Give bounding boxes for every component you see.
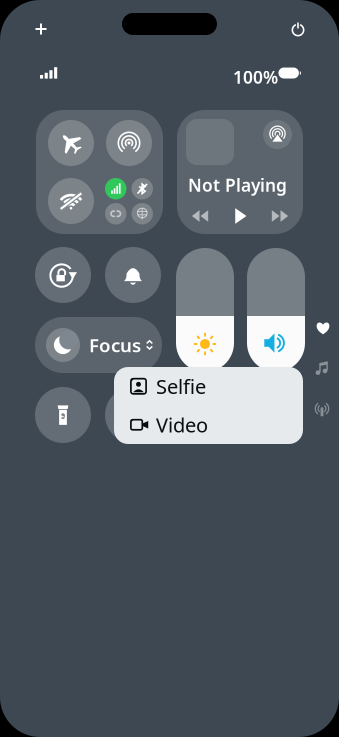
staticText: Not Playing — [188, 173, 287, 196]
button[interactable]: Home controls — [316, 321, 330, 335]
button[interactable]: Power off — [284, 15, 312, 43]
button[interactable]: AirPlay — [263, 120, 292, 149]
button[interactable]: Volume — [247, 248, 305, 372]
button[interactable]: Selfie — [114, 367, 303, 405]
button[interactable]: Media controls — [314, 360, 331, 377]
button[interactable]: Personal Hotspot — [105, 203, 126, 224]
button[interactable]: Flashlight — [35, 387, 91, 443]
button[interactable]: Brightness — [176, 248, 234, 372]
button[interactable]: Fast forward — [267, 207, 293, 225]
button[interactable]: Rewind — [187, 207, 213, 225]
staticText: Video — [156, 411, 208, 438]
button[interactable]: Silent Mode — [105, 247, 161, 303]
button[interactable]: AirDrop — [106, 120, 152, 166]
button[interactable]: Airplane Mode — [48, 120, 94, 166]
button[interactable]: Camera — [105, 387, 161, 443]
button[interactable]: Rotation Lock — [35, 247, 91, 303]
button[interactable]: Satellite — [131, 203, 153, 224]
staticText: Focus — [89, 333, 141, 357]
button[interactable]: Wi-Fi — [48, 178, 94, 224]
button[interactable]: Add a control — [27, 15, 55, 43]
staticText: Selfie — [156, 373, 206, 400]
button[interactable]: Video — [114, 405, 303, 444]
button[interactable]: Bluetooth — [131, 178, 153, 199]
button[interactable]: Cellular Data — [105, 178, 126, 199]
staticText: 100% — [233, 65, 278, 88]
button[interactable]: Connectivity controls — [313, 401, 331, 419]
button[interactable]: Play — [227, 207, 253, 225]
button[interactable]: Focus — [35, 317, 162, 373]
